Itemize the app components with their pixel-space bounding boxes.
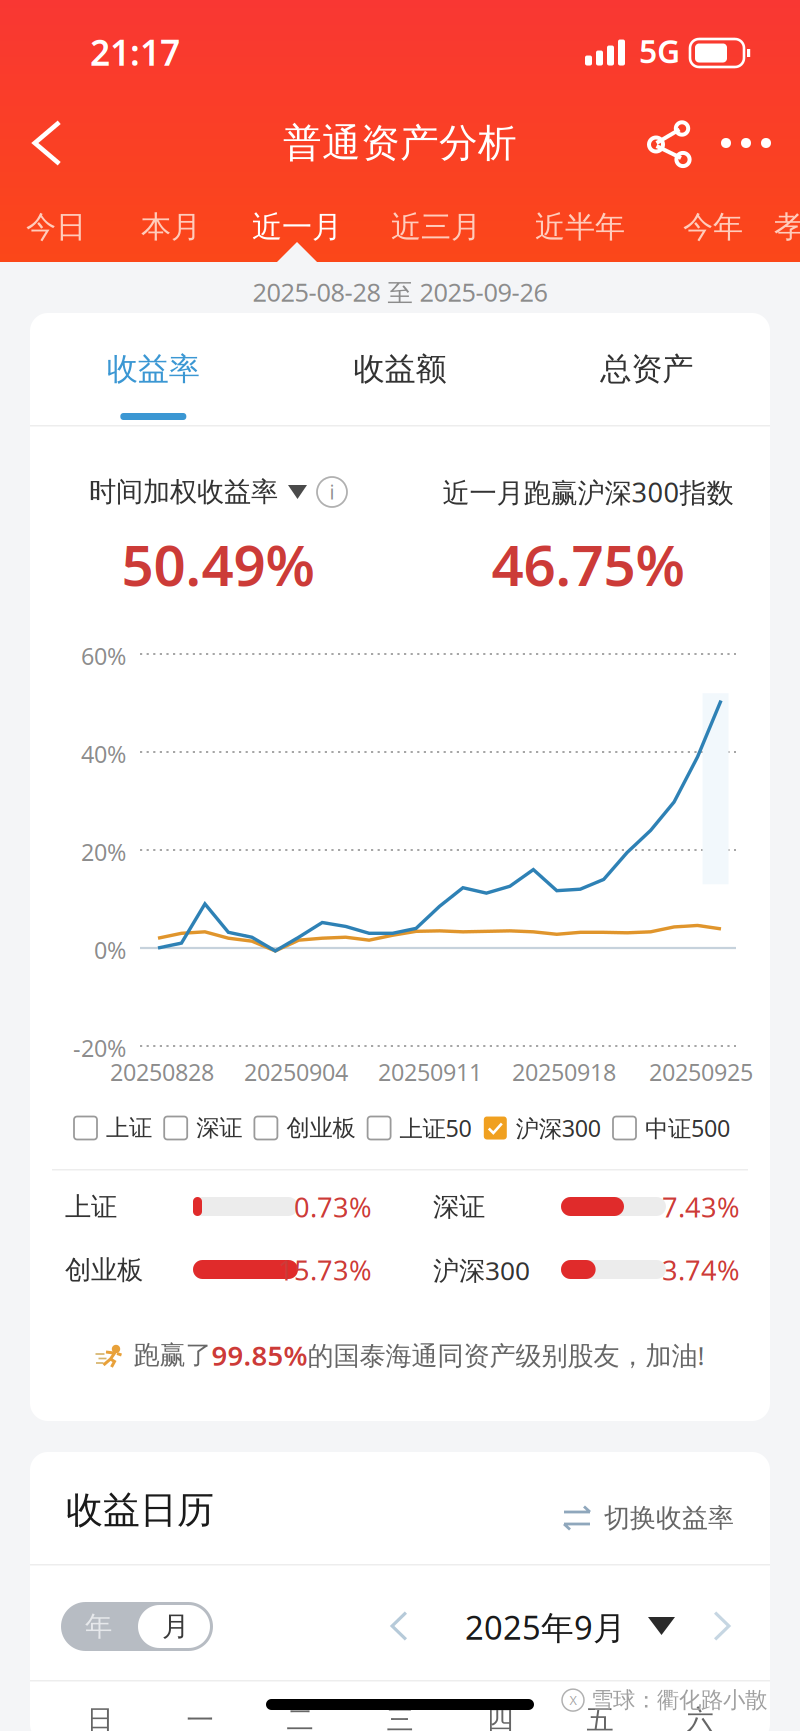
staticText: 本月 <box>141 208 201 246</box>
button[interactable]: Previous month <box>375 1600 423 1652</box>
staticText: 2025-08-28 至 2025-09-26 <box>252 275 547 309</box>
staticText: 3.74% <box>662 1251 740 1288</box>
staticText: 0% <box>94 934 126 966</box>
staticText: 六 <box>686 1703 713 1731</box>
staticText: 上证 <box>106 1113 152 1143</box>
staticText: 雪球：衢化路小散 <box>591 1686 767 1714</box>
staticText: 创业板 <box>65 1253 143 1287</box>
staticText: 今日 <box>26 208 86 246</box>
button[interactable]: 今日 <box>0 192 112 262</box>
button[interactable]: 上证50 <box>368 1110 472 1146</box>
staticText: 上证 <box>65 1190 117 1224</box>
button[interactable]: 总资产 <box>523 313 770 425</box>
staticText: 月 <box>162 1609 189 1644</box>
button[interactable]: 收益率 <box>30 313 277 425</box>
staticText: 近三月 <box>391 208 481 246</box>
button[interactable]: Next month <box>698 1600 746 1652</box>
staticText: X <box>569 1691 576 1709</box>
staticText: 近一月 <box>252 208 342 246</box>
button[interactable]: 今年 <box>652 192 774 262</box>
staticText: 收益率 <box>107 349 200 389</box>
staticText: 20250925 <box>649 1056 753 1088</box>
staticText: 20250828 <box>110 1056 214 1088</box>
staticText: i <box>329 479 334 505</box>
staticText: 中证500 <box>645 1112 730 1144</box>
staticText: 三 <box>386 1703 413 1731</box>
staticText: 0.73% <box>294 1188 372 1225</box>
staticText: 今年 <box>683 208 743 246</box>
staticText: 时间加权收益率 <box>89 475 278 509</box>
button[interactable]: 近三月 <box>364 192 508 262</box>
staticText: 深证 <box>433 1190 485 1224</box>
staticText: 20250911 <box>378 1056 482 1088</box>
staticText: 40% <box>81 738 126 770</box>
staticText: 20% <box>81 836 126 868</box>
staticText: 沪深300 <box>433 1252 530 1288</box>
button[interactable]: Back <box>8 104 86 182</box>
staticText: 创业板 <box>286 1113 355 1143</box>
staticText: 50.49% <box>121 526 314 602</box>
staticText: 46.75% <box>491 526 684 602</box>
button[interactable]: 本月 <box>112 192 230 262</box>
staticText: 切换收益率 <box>604 1502 734 1534</box>
staticText: 近一月跑赢沪深300指数 <box>442 473 733 510</box>
staticText: 沪深300 <box>516 1112 601 1144</box>
staticText: 7.43% <box>662 1188 740 1225</box>
staticText: 深证 <box>196 1113 242 1143</box>
button[interactable]: 中证500 <box>613 1110 730 1146</box>
button[interactable]: More options <box>710 104 782 182</box>
staticText: 5G <box>639 29 680 73</box>
staticText: 99.85% <box>211 1336 307 1374</box>
staticText: 20250904 <box>244 1056 348 1088</box>
button[interactable]: 切换收益率 <box>562 1493 734 1543</box>
staticText: 20250918 <box>512 1056 616 1088</box>
staticText: 收益日历 <box>66 1487 214 1533</box>
button[interactable]: Share <box>634 106 710 184</box>
staticText: 2025年9月 <box>465 1605 626 1649</box>
staticText: 近半年 <box>535 208 625 246</box>
staticText: 普通资产分析 <box>283 119 517 167</box>
staticText: 日 <box>86 1703 113 1731</box>
button[interactable]: 沪深300 <box>484 1110 601 1146</box>
staticText: 上证50 <box>400 1112 472 1144</box>
button[interactable]: 上证 <box>74 1110 152 1146</box>
staticText: 15.73% <box>278 1251 372 1288</box>
staticText: 收益额 <box>353 349 446 389</box>
staticText: 五 <box>586 1703 613 1731</box>
staticText: 年 <box>85 1609 112 1644</box>
button[interactable]: 近一月 <box>230 192 364 262</box>
staticText: 跑赢了 <box>125 1338 211 1371</box>
staticText: 孝 <box>774 208 800 246</box>
button[interactable]: 收益额 <box>277 313 523 425</box>
staticText: 60% <box>81 640 126 672</box>
staticText: 的国泰海通同资产级别股友，加油! <box>307 1337 704 1373</box>
staticText: 总资产 <box>600 349 693 389</box>
staticText: 一 <box>186 1703 213 1731</box>
staticText: -20% <box>73 1032 126 1064</box>
staticText: 二 <box>286 1703 313 1731</box>
button[interactable]: 创业板 <box>254 1110 355 1146</box>
button[interactable]: 近半年 <box>508 192 652 262</box>
button[interactable]: 深证 <box>164 1110 242 1146</box>
staticText: 四 <box>486 1703 513 1731</box>
staticText: 21:17 <box>90 28 180 76</box>
